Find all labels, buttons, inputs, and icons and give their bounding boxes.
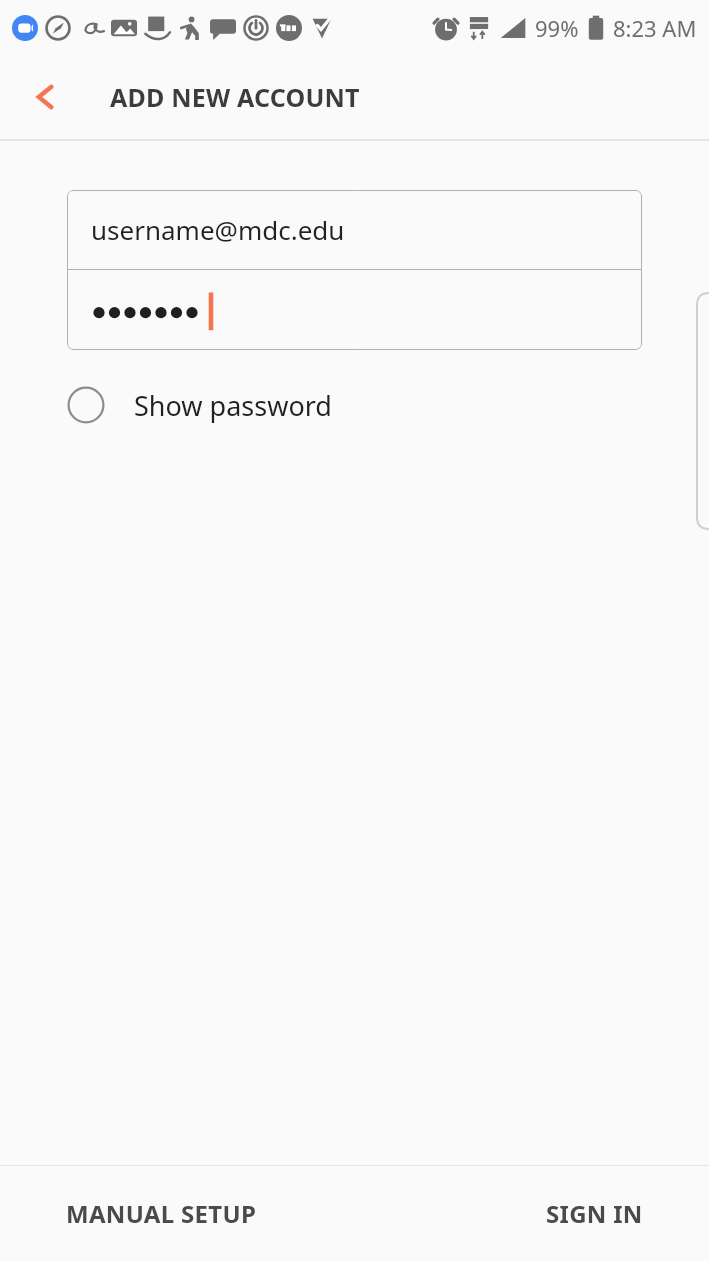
staticText: SIGN IN [546,1197,643,1230]
button[interactable]: MANUAL SETUP [40,1181,283,1246]
button[interactable]: Show password [48,373,332,437]
staticText: ADD NEW ACCOUNT [110,80,360,114]
staticText: 99% [535,13,579,43]
button[interactable]: username@mdc.edu [67,190,642,269]
staticText: MANUAL SETUP [66,1197,257,1230]
button[interactable] [67,270,642,350]
staticText: Show password [134,387,332,424]
button[interactable]: SIGN IN [520,1181,669,1246]
staticText: username@mdc.edu [91,212,345,247]
staticText: 8:23 AM [613,13,697,43]
button[interactable]: Back [22,73,70,121]
